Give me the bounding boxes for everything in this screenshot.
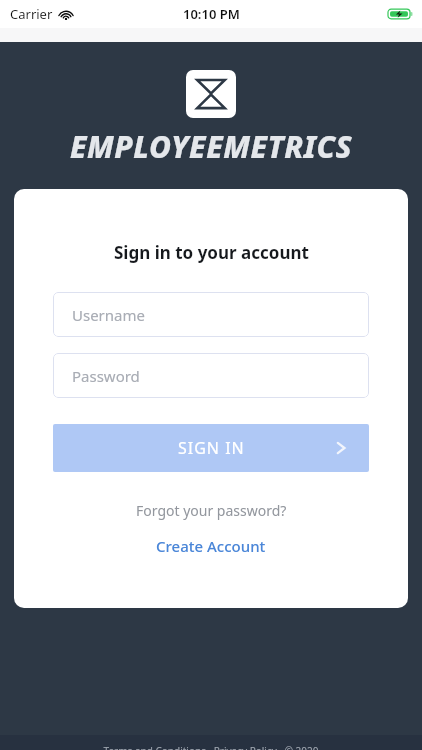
staticText: Forgot your password? xyxy=(136,501,287,520)
button[interactable]: Password xyxy=(53,353,369,398)
staticText: EMPLOYEEMETRICS xyxy=(70,126,353,167)
staticText: Carrier xyxy=(10,5,53,23)
staticText: 10:10 PM xyxy=(183,5,240,23)
staticText: Sign in to your account xyxy=(114,241,309,264)
other: Sign in xyxy=(333,440,349,456)
staticText: Username xyxy=(72,305,145,325)
staticText: SIGN IN xyxy=(178,437,245,459)
staticText: Terms and Conditions Privacy Policy © 20… xyxy=(0,744,422,750)
button[interactable]: SIGN IN xyxy=(53,424,369,472)
button[interactable]: Username xyxy=(53,292,369,337)
button[interactable]: Create Account xyxy=(148,533,274,559)
staticText: Password xyxy=(72,366,140,386)
button[interactable]: Forgot your password? xyxy=(128,498,295,523)
staticText: Create Account xyxy=(156,536,266,556)
